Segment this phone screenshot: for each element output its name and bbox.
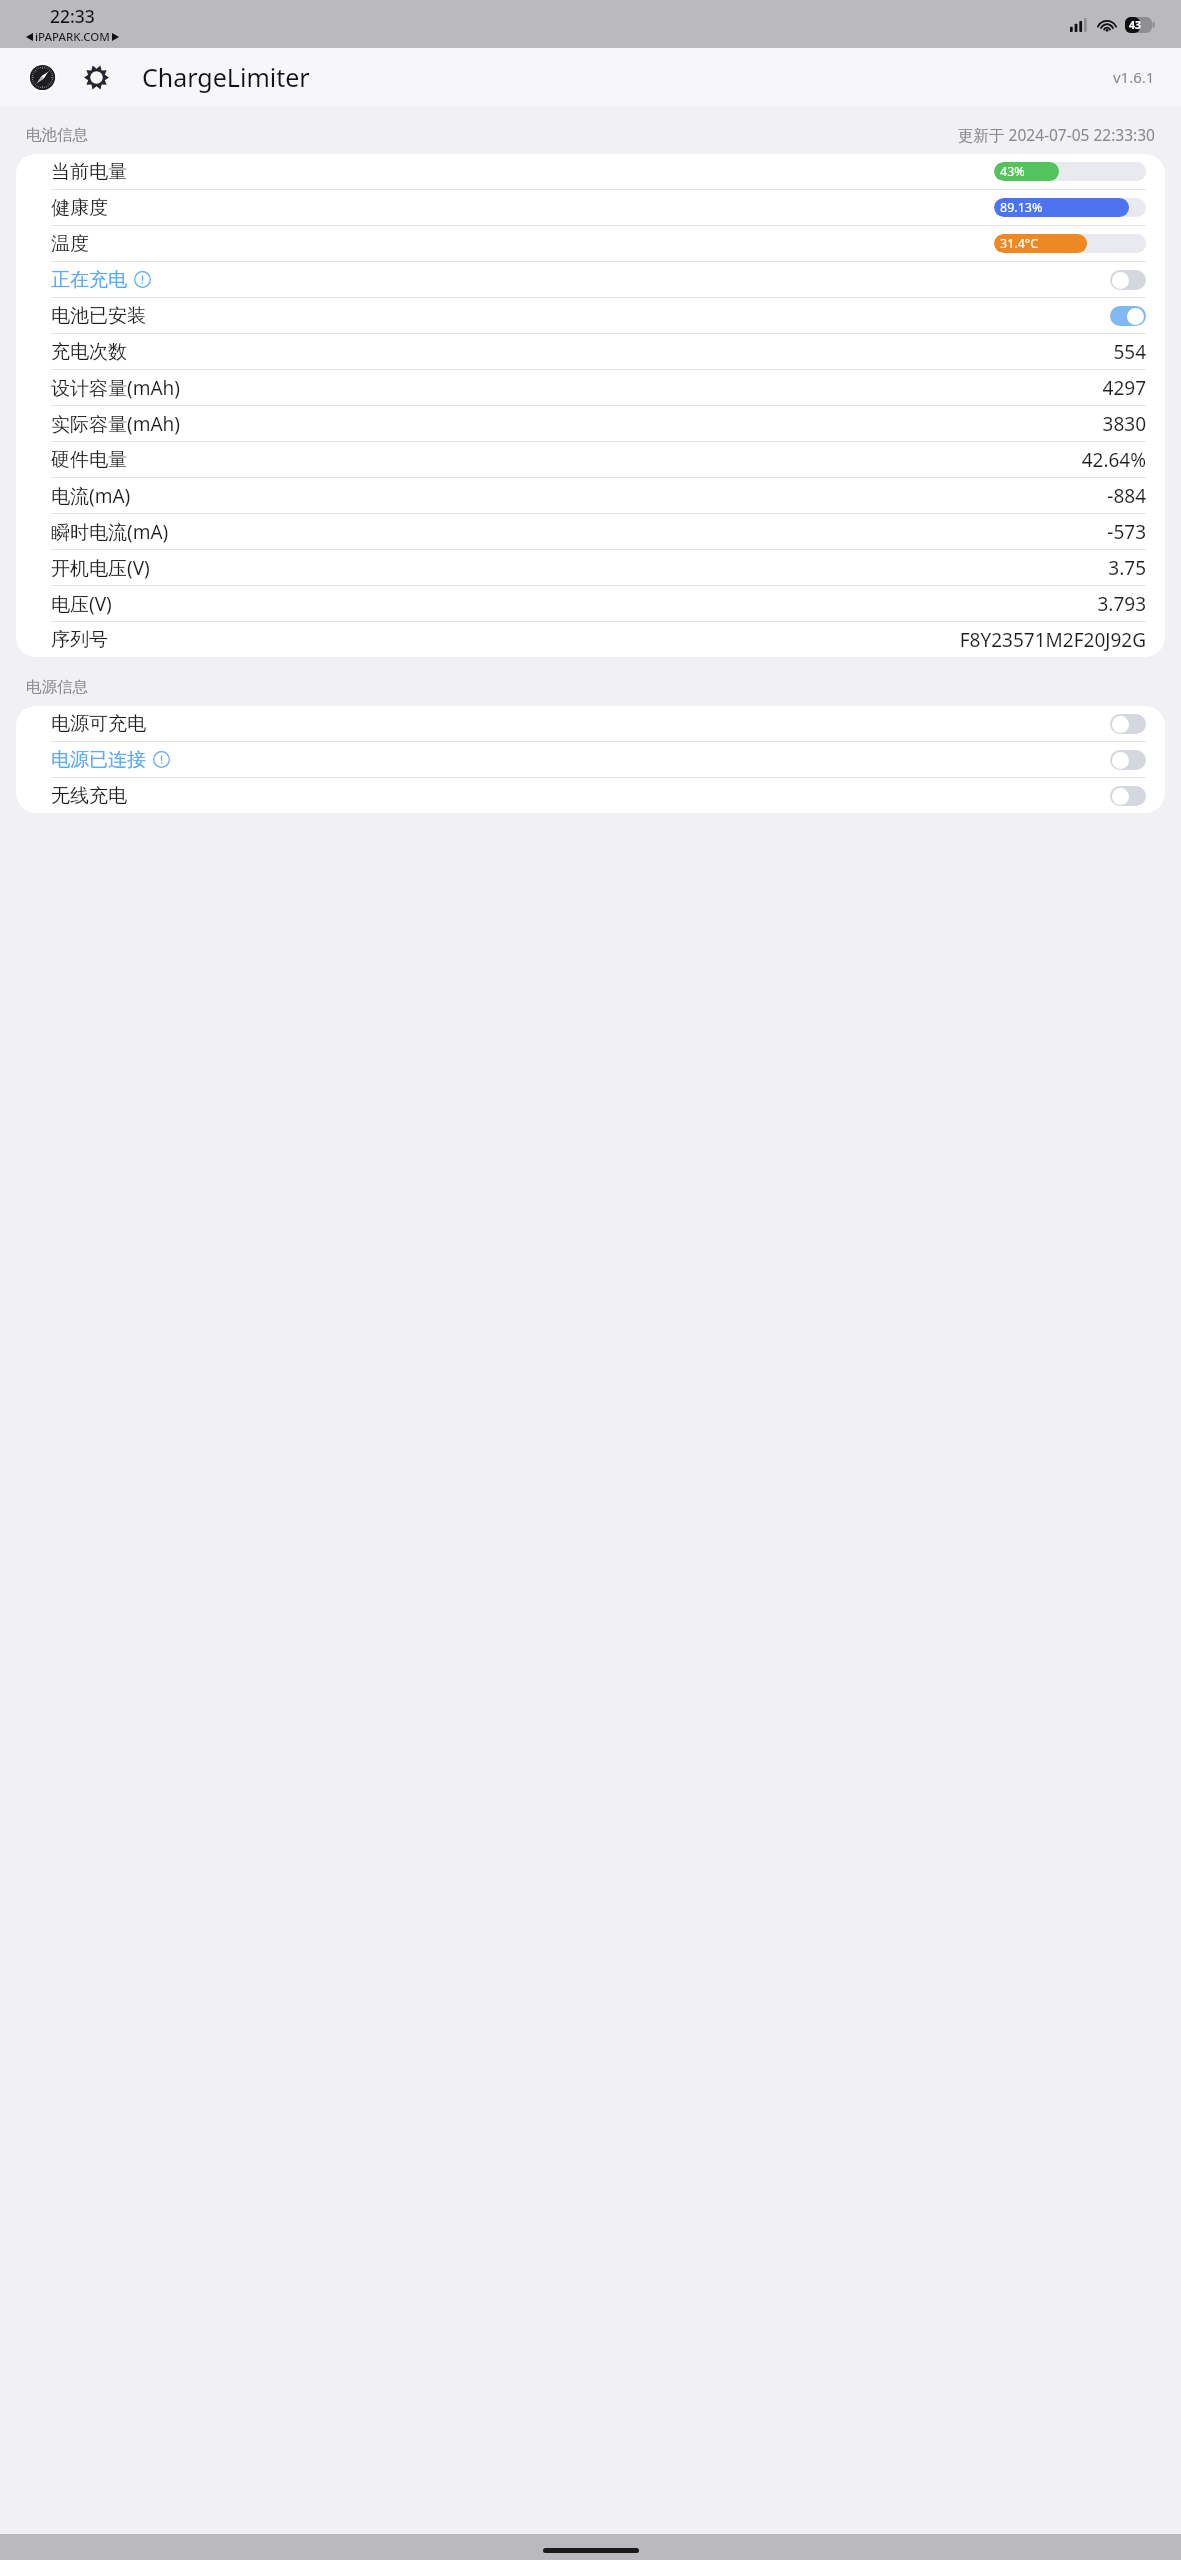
staticText: 瞬时电流(mA) bbox=[51, 519, 169, 545]
staticText: v1.6.1 bbox=[1113, 67, 1155, 87]
staticText: -573 bbox=[1107, 519, 1146, 545]
staticText: iPAPARK.COM bbox=[35, 29, 110, 45]
staticText: 电源已连接 bbox=[51, 748, 146, 772]
staticText: ChargeLimiter bbox=[142, 60, 310, 94]
button[interactable]: Settings bbox=[76, 57, 116, 97]
staticText: 3.75 bbox=[1108, 555, 1146, 581]
staticText: 电池信息 bbox=[26, 125, 88, 145]
staticText: 电压(V) bbox=[51, 591, 112, 617]
staticText: 当前电量 bbox=[51, 160, 127, 184]
staticText: 电池已安装 bbox=[51, 304, 146, 328]
staticText: 电源信息 bbox=[26, 677, 88, 697]
staticText: 充电次数 bbox=[51, 340, 127, 364]
staticText: 温度 bbox=[51, 232, 89, 256]
button[interactable]: 电源已连接 bbox=[16, 742, 1165, 777]
button[interactable]: 开机电压(V) bbox=[16, 550, 1165, 585]
staticText: -884 bbox=[1107, 483, 1146, 509]
staticText: 实际容量(mAh) bbox=[51, 411, 181, 437]
button[interactable]: 电池已安装 bbox=[16, 298, 1165, 333]
staticText: 硬件电量 bbox=[51, 448, 127, 472]
staticText: 序列号 bbox=[51, 628, 108, 652]
button[interactable]: 无线充电 bbox=[1110, 786, 1146, 806]
staticText: 42.64% bbox=[1081, 447, 1146, 473]
button[interactable]: 电压(V) bbox=[16, 586, 1165, 621]
button[interactable]: 瞬时电流(mA) bbox=[16, 514, 1165, 549]
staticText: 31.4°C bbox=[1000, 235, 1039, 252]
staticText: 4297 bbox=[1102, 375, 1146, 401]
button[interactable]: 正在充电 bbox=[1110, 270, 1146, 290]
button[interactable]: 电源可充电 bbox=[16, 706, 1165, 741]
button[interactable]: 电源可充电 bbox=[1110, 714, 1146, 734]
staticText: 554 bbox=[1113, 339, 1146, 365]
button[interactable]: Safari bbox=[22, 57, 62, 97]
button[interactable]: 实际容量(mAh) bbox=[16, 406, 1165, 441]
button[interactable]: 电源已连接 bbox=[1110, 750, 1146, 770]
staticText: 43 bbox=[1129, 18, 1142, 32]
staticText: 电流(mA) bbox=[51, 483, 131, 509]
button[interactable]: 硬件电量 bbox=[16, 442, 1165, 477]
staticText: F8Y23571M2F20J92G bbox=[959, 627, 1146, 653]
button[interactable]: 序列号 bbox=[16, 622, 1165, 657]
button[interactable]: 设计容量(mAh) bbox=[16, 370, 1165, 405]
staticText: 正在充电 bbox=[51, 268, 127, 292]
staticText: 22:33 bbox=[50, 4, 95, 28]
button[interactable]: 充电次数 bbox=[16, 334, 1165, 369]
staticText: 3830 bbox=[1102, 411, 1146, 437]
staticText: 开机电压(V) bbox=[51, 555, 150, 581]
staticText: 电源可充电 bbox=[51, 712, 146, 736]
button[interactable]: 正在充电 bbox=[16, 262, 1165, 297]
button[interactable]: 电池已安装 bbox=[1110, 306, 1146, 326]
button[interactable]: 当前电量 bbox=[16, 154, 1165, 189]
button[interactable]: 无线充电 bbox=[16, 778, 1165, 813]
staticText: 设计容量(mAh) bbox=[51, 375, 181, 401]
staticText: 89.13% bbox=[1000, 199, 1043, 216]
staticText: 3.793 bbox=[1097, 591, 1146, 617]
button[interactable]: 电流(mA) bbox=[16, 478, 1165, 513]
button[interactable]: 健康度 bbox=[16, 190, 1165, 225]
staticText: 健康度 bbox=[51, 196, 108, 220]
staticText: 43% bbox=[1000, 163, 1025, 180]
button[interactable]: 温度 bbox=[16, 226, 1165, 261]
staticText: 更新于 2024-07-05 22:33:30 bbox=[958, 124, 1155, 145]
staticText: 无线充电 bbox=[51, 784, 127, 808]
